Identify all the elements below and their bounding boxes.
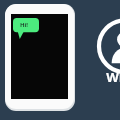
other: App logo [0, 0, 120, 120]
button[interactable] [5, 4, 75, 111]
